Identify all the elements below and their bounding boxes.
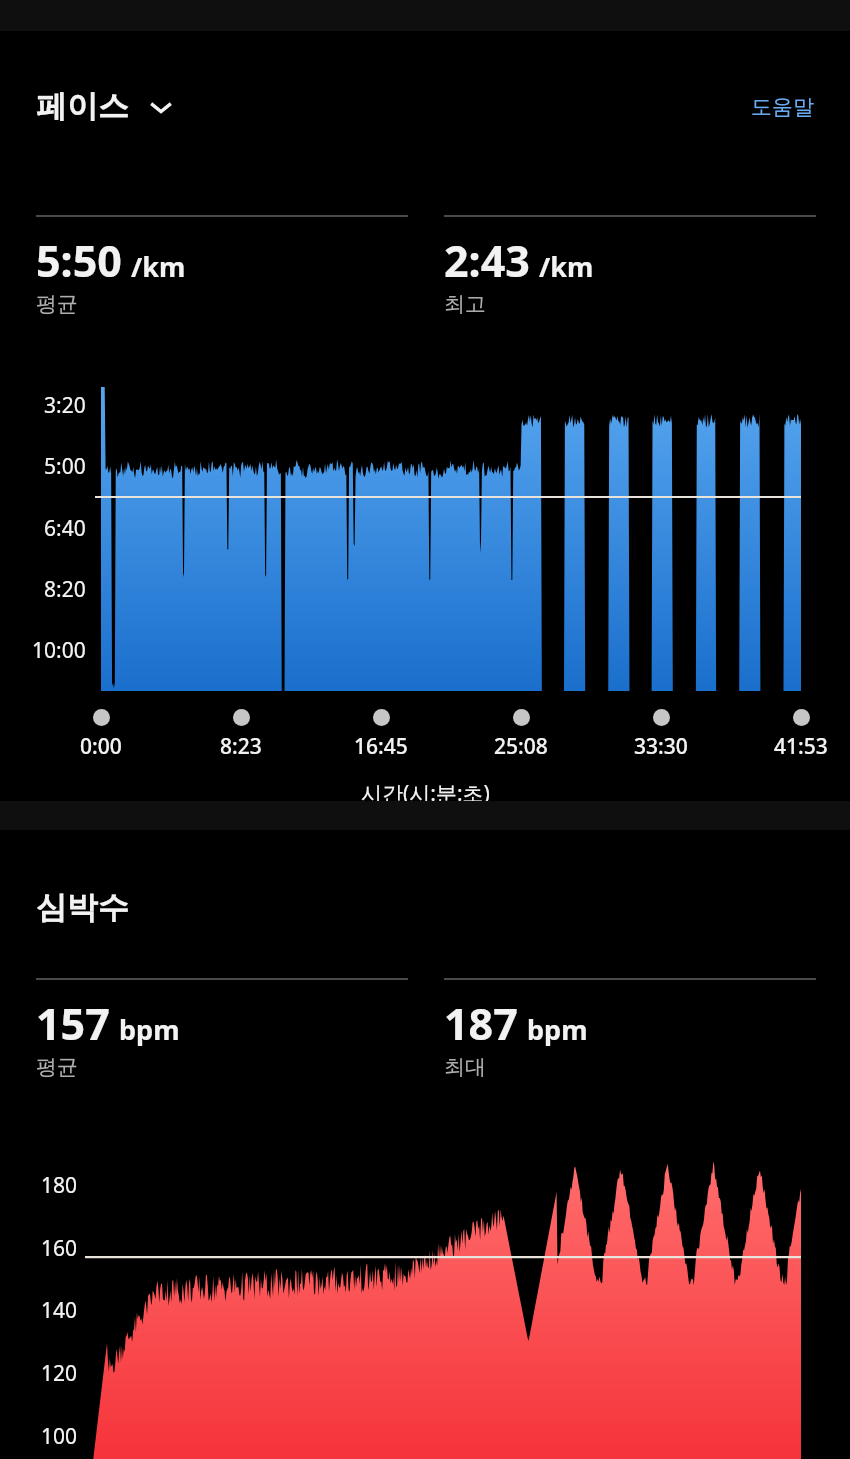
staticText: 2:43 [444,231,530,290]
staticText: 페이스 [36,87,129,126]
staticText: 도움말 [751,94,814,120]
staticText: 180 [41,1171,78,1200]
button[interactable]: 157 [36,994,180,1080]
staticText: 25:08 [494,732,548,761]
staticText: 16:45 [354,732,408,761]
staticText: bpm [119,1011,180,1048]
staticText: 최고 [444,291,486,317]
staticText: 평균 [36,291,78,317]
staticText: 0:00 [80,732,122,761]
staticText: 8:23 [220,732,262,761]
staticText: 160 [41,1234,78,1263]
staticText: 140 [41,1296,78,1325]
staticText: 6:40 [44,514,86,543]
staticText: 3:20 [44,391,86,420]
other: Change metric [147,93,175,121]
staticText: 157 [36,994,110,1053]
staticText: /km [131,248,186,285]
button[interactable]: 심박수 [36,888,129,927]
staticText: 100 [41,1422,78,1451]
staticText: 187 [444,994,518,1053]
staticText: 33:30 [634,732,688,761]
staticText: 120 [41,1359,78,1388]
button[interactable]: 187 [444,994,588,1080]
staticText: 5:50 [36,231,122,290]
staticText: 평균 [36,1054,78,1080]
staticText: 41:53 [774,732,828,761]
staticText: 5:00 [44,452,86,481]
staticText: /km [539,248,594,285]
staticText: 시간(시:분:초) [361,779,490,808]
button[interactable]: 페이스 [36,87,185,126]
staticText: 심박수 [36,888,129,927]
button[interactable]: 5:50 [36,231,186,317]
staticText: 8:20 [44,575,86,604]
staticText: bpm [527,1011,588,1048]
button[interactable]: 도움말 [751,94,814,120]
button[interactable]: 2:43 [444,231,594,317]
staticText: 10:00 [32,636,86,665]
staticText: 최대 [444,1054,486,1080]
